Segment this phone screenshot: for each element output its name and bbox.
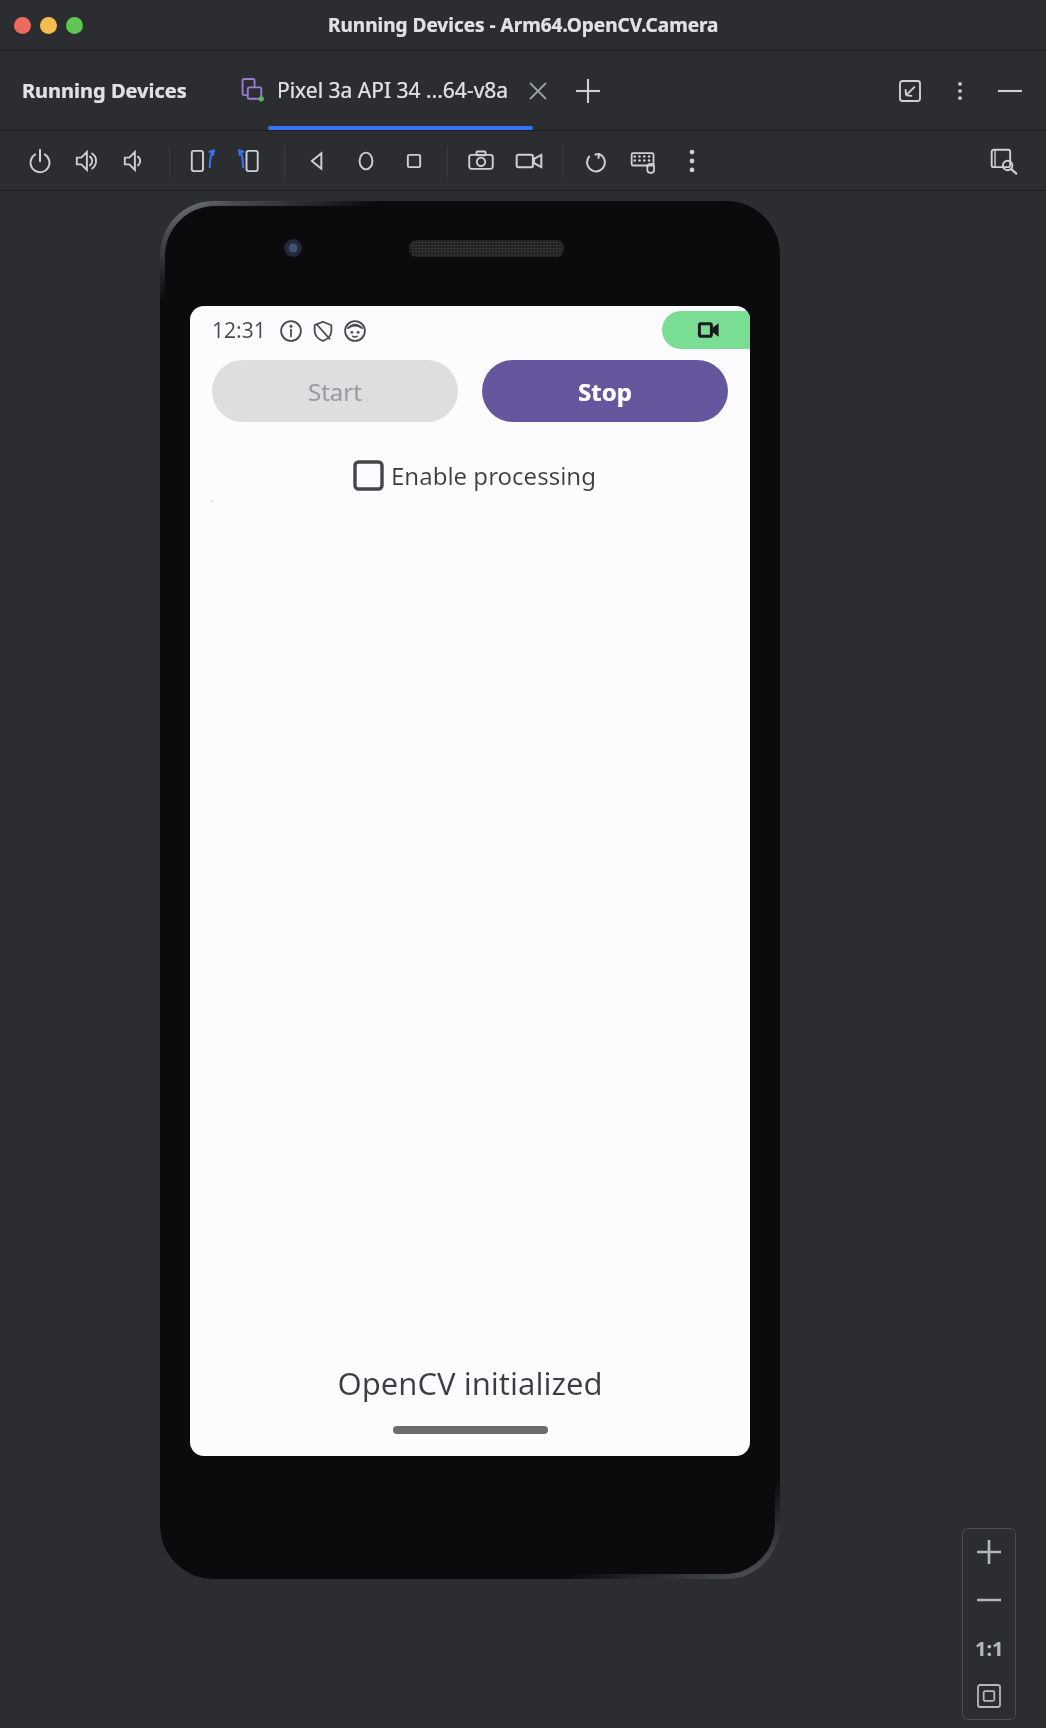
button[interactable]: Stop bbox=[482, 360, 728, 422]
button[interactable]: Rotate left bbox=[179, 137, 227, 185]
button[interactable]: Snapshots bbox=[980, 137, 1028, 185]
button[interactable]: Volume down bbox=[112, 137, 160, 185]
button[interactable]: More bbox=[668, 137, 716, 185]
button[interactable]: Rotate right bbox=[227, 137, 275, 185]
staticText: Pixel 3a API 34 ...64-v8a bbox=[277, 76, 509, 105]
button[interactable]: Overview bbox=[390, 137, 438, 185]
button[interactable]: Hardware input bbox=[620, 137, 668, 185]
staticText: Running Devices - Arm64.OpenCV.Camera bbox=[328, 12, 719, 38]
button[interactable]: Power bbox=[16, 137, 64, 185]
button[interactable]: Enable processing bbox=[345, 452, 596, 498]
button[interactable]: Start bbox=[212, 360, 458, 422]
staticText: Running Devices bbox=[22, 77, 187, 104]
button[interactable]: Virtual device bbox=[235, 68, 557, 113]
staticText: Stop bbox=[578, 375, 632, 408]
button[interactable]: Options bbox=[942, 73, 978, 109]
button[interactable]: Close tab bbox=[525, 78, 551, 104]
button[interactable]: Add device bbox=[571, 74, 605, 108]
staticText: Enable processing bbox=[391, 459, 596, 492]
button[interactable]: Home bbox=[342, 137, 390, 185]
button[interactable]: Back bbox=[294, 137, 342, 185]
staticText: 12:31 bbox=[212, 316, 266, 345]
button[interactable]: Record screen bbox=[505, 137, 553, 185]
button[interactable]: Camera in use bbox=[662, 311, 750, 349]
button[interactable]: Volume up bbox=[64, 137, 112, 185]
button[interactable]: Maximise bbox=[66, 17, 83, 34]
button[interactable]: Minimise bbox=[992, 73, 1028, 109]
button[interactable]: Minimise bbox=[40, 17, 57, 34]
button[interactable]: Hide tool window bbox=[892, 73, 928, 109]
button[interactable]: Zoom out bbox=[962, 1576, 1016, 1624]
button[interactable]: Zoom in bbox=[962, 1528, 1016, 1576]
button[interactable]: Close bbox=[14, 17, 31, 34]
button[interactable]: Screenshot bbox=[457, 137, 505, 185]
button[interactable]: Rotate reset bbox=[572, 137, 620, 185]
staticText: 1:1 bbox=[975, 1635, 1004, 1662]
button[interactable]: Zoom to fit bbox=[962, 1672, 1016, 1720]
other: Virtual device bbox=[241, 78, 267, 104]
button[interactable]: 1:1 bbox=[962, 1624, 1016, 1672]
staticText: Start bbox=[308, 375, 362, 408]
staticText: OpenCV initialized bbox=[190, 1362, 750, 1404]
